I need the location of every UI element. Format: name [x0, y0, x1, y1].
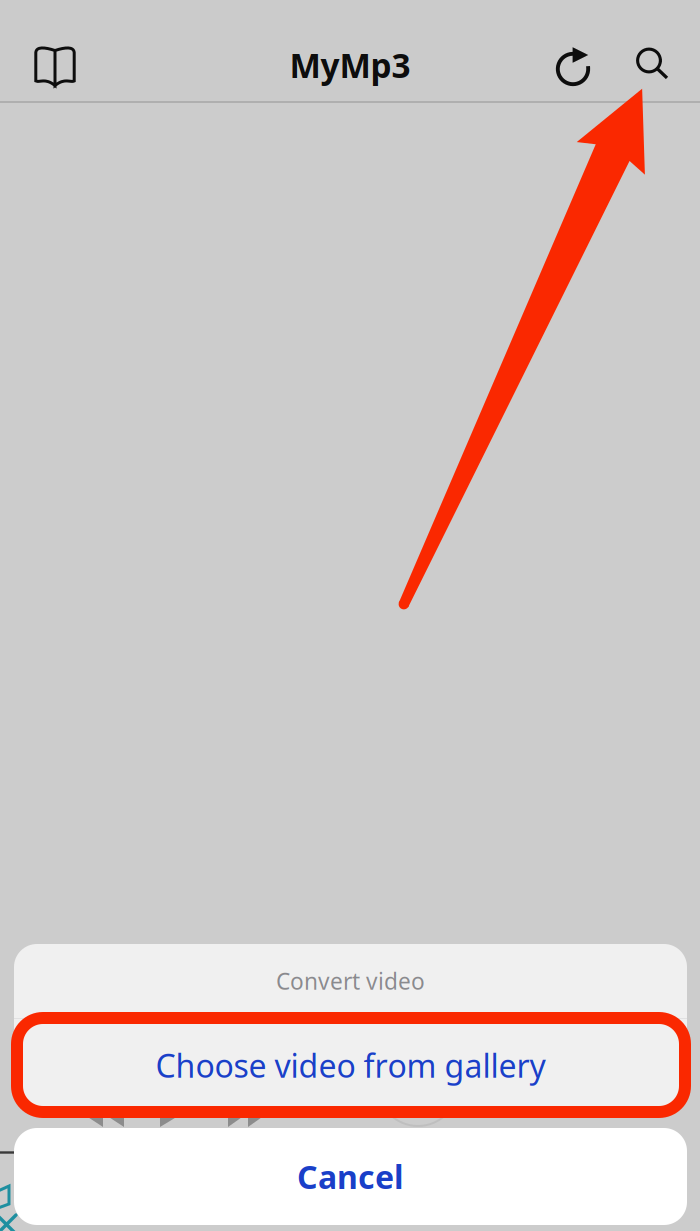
button[interactable]: Library — [25, 37, 85, 93]
staticText: Choose video from gallery — [155, 1044, 545, 1086]
staticText: MyMp3 — [289, 43, 410, 87]
button[interactable]: Cancel — [14, 1128, 687, 1225]
button[interactable]: Search — [627, 37, 679, 93]
staticText: Cancel — [297, 1155, 404, 1198]
button[interactable]: Choose video from gallery — [14, 1018, 687, 1112]
button[interactable]: Refresh — [547, 37, 601, 93]
staticText: Convert video — [276, 966, 425, 996]
